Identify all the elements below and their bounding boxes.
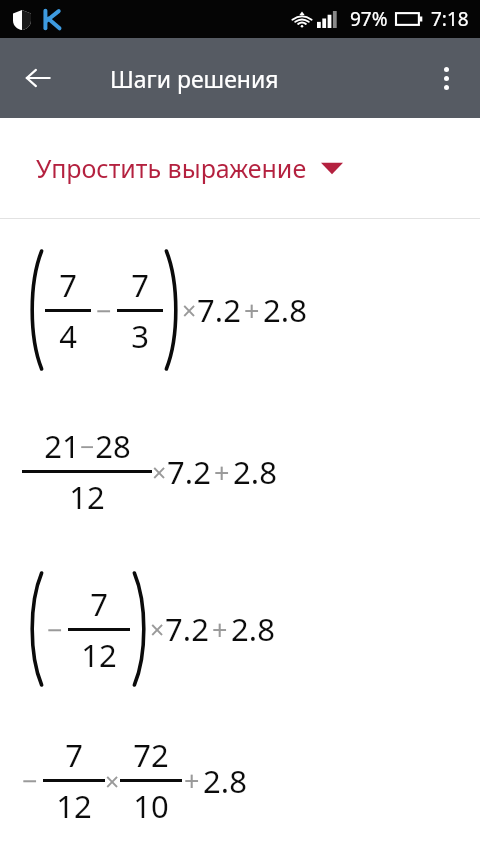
staticText: 21 xyxy=(44,425,80,467)
staticText: 7.2 xyxy=(167,451,211,493)
staticText: 7 xyxy=(65,734,83,776)
button[interactable]: Назад xyxy=(14,54,62,102)
staticText: Шаги решения xyxy=(110,63,279,94)
staticText: × xyxy=(152,455,167,489)
staticText: × xyxy=(150,612,165,646)
staticText: + xyxy=(214,454,230,491)
staticText: − xyxy=(47,611,63,648)
staticText: − xyxy=(80,429,95,463)
staticText: 72 xyxy=(133,734,169,776)
staticText: 7.2 xyxy=(165,608,209,650)
staticText: 97% xyxy=(350,6,388,32)
staticText: 12 xyxy=(56,785,92,827)
staticText: 7.2 xyxy=(197,289,241,331)
staticText: 2.8 xyxy=(263,289,307,331)
staticText: × xyxy=(105,764,120,798)
staticText: 7:18 xyxy=(431,6,469,32)
staticText: + xyxy=(212,611,228,648)
staticText: + xyxy=(184,762,200,799)
staticText: 7 xyxy=(131,264,149,306)
staticText: 3 xyxy=(131,315,149,357)
staticText: 7 xyxy=(59,264,77,306)
button[interactable]: Упростить выражение xyxy=(0,118,480,218)
staticText: + xyxy=(244,292,260,329)
staticText: Упростить выражение xyxy=(36,151,307,185)
staticText: − xyxy=(96,292,112,329)
staticText: 2.8 xyxy=(233,451,277,493)
staticText: 28 xyxy=(95,425,131,467)
staticText: 12 xyxy=(81,634,117,676)
staticText: 7 xyxy=(90,583,108,625)
staticText: × xyxy=(182,293,197,327)
staticText: 10 xyxy=(133,785,169,827)
staticText: 2.8 xyxy=(231,608,275,650)
staticText: 4 xyxy=(59,315,77,357)
staticText: 12 xyxy=(69,476,105,518)
staticText: − xyxy=(22,762,38,799)
button[interactable]: Ещё xyxy=(422,54,470,102)
staticText: 2.8 xyxy=(203,760,247,802)
